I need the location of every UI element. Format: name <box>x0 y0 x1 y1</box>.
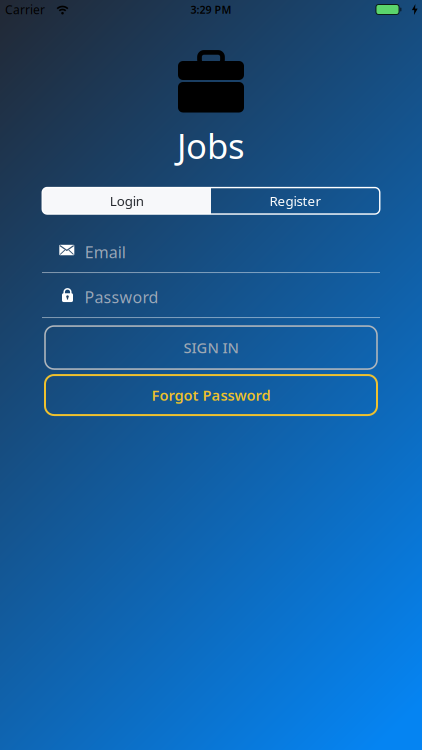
button[interactable]: Login <box>42 187 211 214</box>
staticText: Forgot Password <box>151 385 270 405</box>
staticText: Password <box>84 286 158 308</box>
staticText: SIGN IN <box>183 338 238 357</box>
staticText: Login <box>110 192 144 210</box>
button[interactable]: Register <box>211 187 380 214</box>
button[interactable]: Forgot Password <box>45 375 377 415</box>
staticText: Carrier <box>5 1 45 17</box>
button[interactable]: SIGN IN <box>45 326 377 369</box>
button[interactable]: Password <box>42 289 380 318</box>
staticText: 3:29 PM <box>190 2 231 17</box>
staticText: Jobs <box>177 122 245 168</box>
staticText: Email <box>85 241 126 263</box>
button[interactable]: Email <box>42 244 380 273</box>
staticText: Register <box>269 192 321 210</box>
